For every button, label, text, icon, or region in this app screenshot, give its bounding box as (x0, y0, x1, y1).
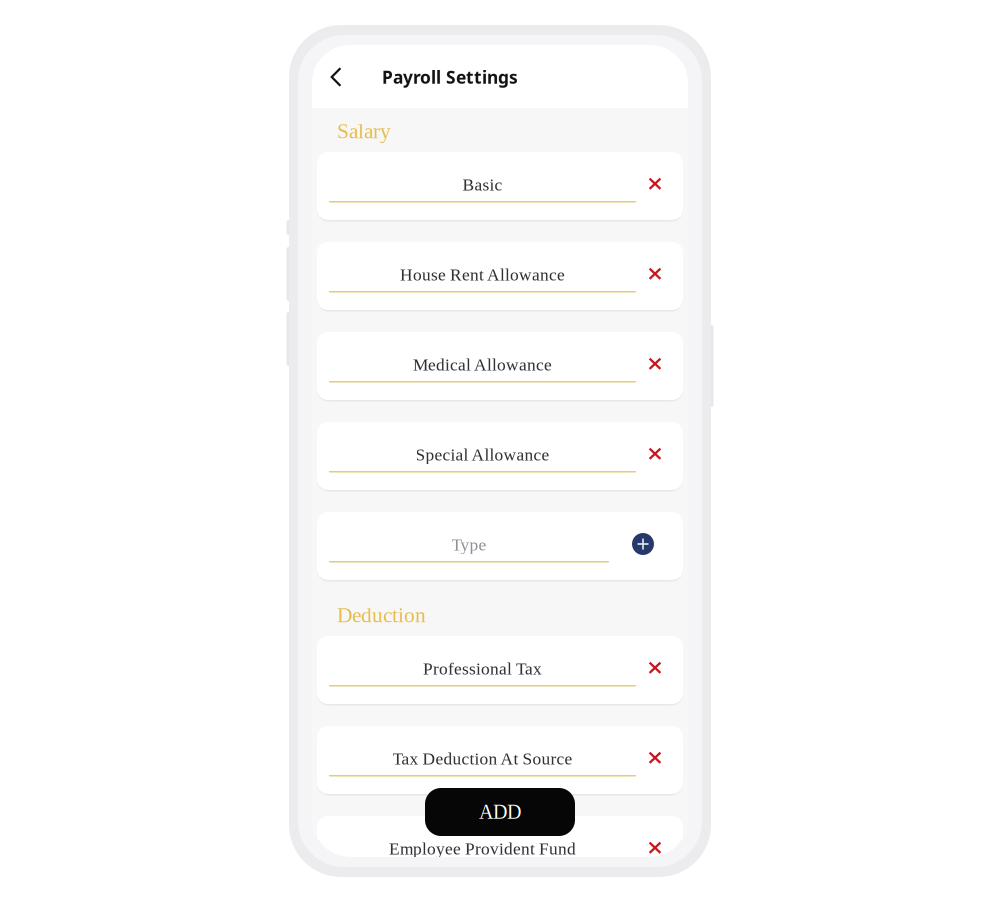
button[interactable]: Back (321, 62, 351, 92)
button[interactable]: ADD (425, 788, 575, 836)
button[interactable]: Medical Allowance (317, 333, 683, 401)
staticText: House Rent Allowance (400, 265, 565, 284)
staticText: Type (451, 535, 486, 554)
button[interactable]: House Rent Allowance (317, 243, 683, 311)
staticText: Professional Tax (423, 659, 542, 678)
staticText: Tax Deduction At Source (392, 749, 572, 768)
staticText: Special Allowance (415, 445, 549, 464)
button[interactable]: Basic (317, 153, 683, 221)
staticText: Salary (337, 119, 391, 143)
staticText: Payroll Settings (382, 65, 518, 88)
staticText: Basic (462, 175, 502, 194)
button[interactable]: Employee Provident Fund (317, 817, 683, 885)
button[interactable]: Tax Deduction At Source (317, 727, 683, 795)
staticText: Deduction (337, 603, 426, 627)
button[interactable]: Professional Tax (317, 637, 683, 705)
button[interactable]: Special Allowance (317, 423, 683, 491)
staticText: Medical Allowance (413, 355, 552, 374)
button[interactable]: Type (317, 513, 683, 581)
staticText: ADD (479, 801, 521, 823)
staticText: Employee Provident Fund (389, 839, 576, 858)
